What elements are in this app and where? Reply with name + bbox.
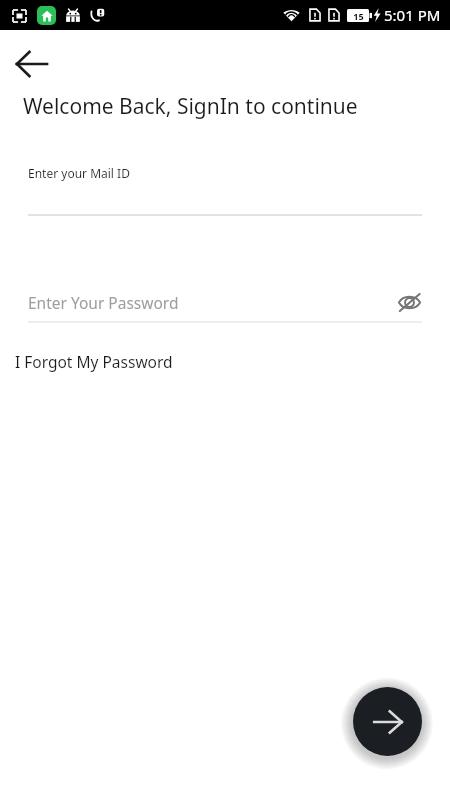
staticText: I Forgot My Password [15, 351, 173, 372]
staticText: Welcome Back, SignIn to continue [23, 92, 358, 121]
staticText: Enter your Mail ID [28, 165, 130, 181]
button[interactable]: Show password [394, 287, 424, 317]
button[interactable]: Enter your Mail ID [0, 165, 450, 216]
button[interactable]: Enter Your Password [0, 285, 450, 323]
staticText: Enter Your Password [28, 292, 179, 313]
staticText: 15 [353, 10, 364, 22]
button[interactable]: Back [10, 42, 54, 86]
button[interactable]: Sign in [353, 687, 422, 756]
staticText: 5:01 PM [384, 5, 441, 25]
button[interactable]: I Forgot My Password [0, 351, 450, 372]
